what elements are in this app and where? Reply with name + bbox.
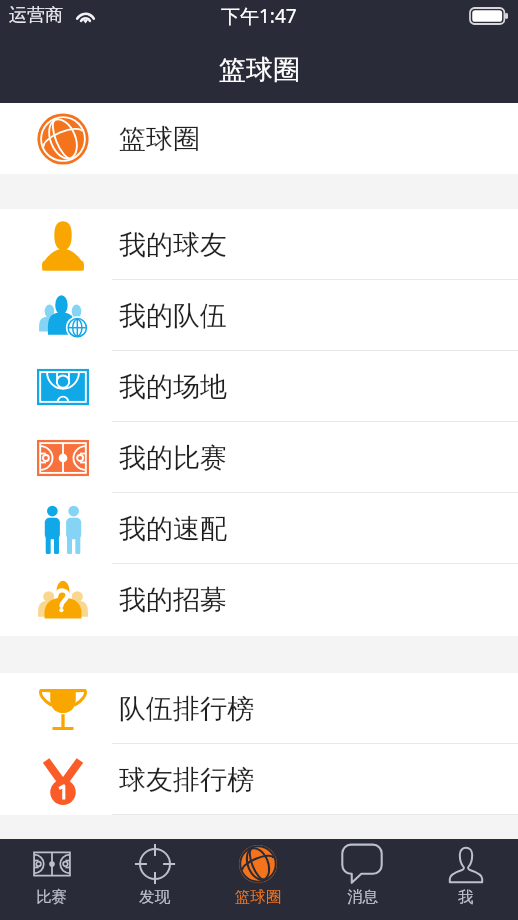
staticText: 我的比赛: [119, 441, 227, 475]
staticText: 发现: [139, 887, 170, 907]
staticText: 我的速配: [119, 512, 227, 546]
button[interactable]: 我的速配: [0, 493, 518, 564]
other: 消息: [342, 844, 382, 884]
button[interactable]: 比赛: [0, 839, 103, 920]
staticText: 球友排行榜: [119, 763, 254, 797]
button[interactable]: 球友排行榜: [0, 744, 518, 815]
staticText: 下午1:47: [221, 3, 297, 29]
button[interactable]: 发现: [103, 839, 206, 920]
other: 比赛: [32, 844, 72, 884]
staticText: 我的队伍: [119, 299, 227, 333]
staticText: 我的球友: [119, 228, 227, 262]
staticText: 运营商: [9, 4, 63, 27]
button[interactable]: 我的球友: [0, 209, 518, 280]
button[interactable]: 篮球圈: [206, 839, 310, 920]
staticText: 比赛: [36, 887, 67, 907]
staticText: 我: [458, 887, 474, 907]
button[interactable]: 我的比赛: [0, 422, 518, 493]
other: 发现: [135, 844, 175, 884]
staticText: 我的场地: [119, 370, 227, 404]
staticText: 队伍排行榜: [119, 692, 254, 726]
other: 篮球圈: [238, 844, 278, 884]
button[interactable]: 篮球圈: [0, 103, 518, 174]
button[interactable]: 我的场地: [0, 351, 518, 422]
button[interactable]: 我的招募: [0, 564, 518, 636]
button[interactable]: 我的队伍: [0, 280, 518, 351]
staticText: 篮球圈: [219, 53, 300, 87]
staticText: 篮球圈: [119, 122, 200, 156]
button[interactable]: 队伍排行榜: [0, 673, 518, 744]
button[interactable]: 消息: [310, 839, 414, 920]
other: 我: [446, 844, 486, 884]
staticText: 消息: [347, 887, 378, 907]
button[interactable]: 我: [414, 839, 518, 920]
staticText: 篮球圈: [235, 887, 282, 907]
staticText: 我的招募: [119, 583, 227, 617]
